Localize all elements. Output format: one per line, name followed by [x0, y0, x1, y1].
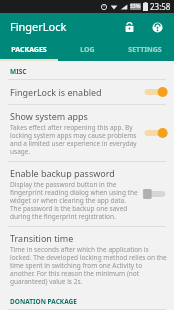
- staticText: PACKAGES: [11, 45, 47, 55]
- button[interactable]: SETTINGS: [116, 40, 174, 59]
- button[interactable]: Transition time: [0, 227, 174, 291]
- button[interactable]: Toggle off: [142, 187, 168, 201]
- staticText: 23:58: [150, 1, 171, 12]
- staticText: Display the password button in the finge…: [10, 180, 138, 221]
- button[interactable]: Lock: [118, 16, 140, 38]
- staticText: MISC: [10, 67, 27, 76]
- button[interactable]: Toggle on: [142, 85, 168, 99]
- button[interactable]: PACKAGES: [0, 40, 58, 59]
- staticText: DONATION PACKAGE: [10, 297, 77, 306]
- button[interactable]: Show system apps: [0, 105, 174, 161]
- button[interactable]: Help: [146, 16, 168, 38]
- staticText: Takes effect after reopening this app. B…: [10, 123, 138, 156]
- staticText: Show system apps: [10, 110, 88, 122]
- staticText: 53%: [130, 3, 141, 10]
- staticText: Time in seconds after which the applicat…: [10, 245, 168, 286]
- staticText: Enable backup password: [10, 167, 115, 179]
- staticText: FingerLock: [10, 19, 67, 34]
- staticText: LOG: [80, 45, 95, 55]
- staticText: SETTINGS: [128, 45, 162, 55]
- button[interactable]: FingerLock is enabled: [0, 80, 174, 104]
- button[interactable]: LOG: [58, 40, 116, 59]
- button[interactable]: Enable backup password: [0, 162, 174, 226]
- button[interactable]: Toggle on: [142, 126, 168, 140]
- staticText: Transition time: [10, 232, 74, 244]
- staticText: FingerLock is enabled: [10, 86, 102, 98]
